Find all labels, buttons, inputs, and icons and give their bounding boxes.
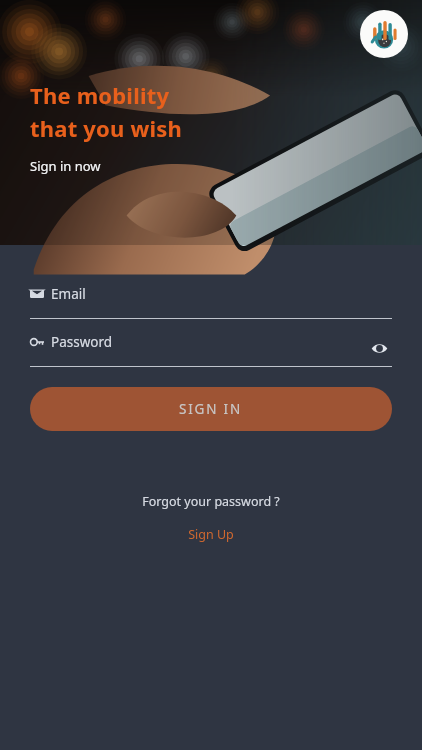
button[interactable]: SIGN IN xyxy=(30,387,392,431)
button[interactable]: Email xyxy=(0,285,422,319)
staticText: Sign in now xyxy=(30,157,101,175)
staticText: The mobility xyxy=(30,80,170,110)
staticText: Password xyxy=(51,333,113,351)
button[interactable]: Password xyxy=(0,333,422,367)
button[interactable]: Show password xyxy=(367,336,392,361)
staticText: Forgot your password ? xyxy=(142,493,280,510)
staticText: Email xyxy=(51,285,86,303)
button[interactable]: Forgot your password ? xyxy=(0,493,422,510)
button[interactable]: Sign Up xyxy=(0,526,422,543)
staticText: SIGN IN xyxy=(179,400,243,418)
staticText: Sign Up xyxy=(188,526,234,543)
staticText: that you wish xyxy=(30,113,182,143)
button[interactable]: App logo xyxy=(360,10,408,58)
